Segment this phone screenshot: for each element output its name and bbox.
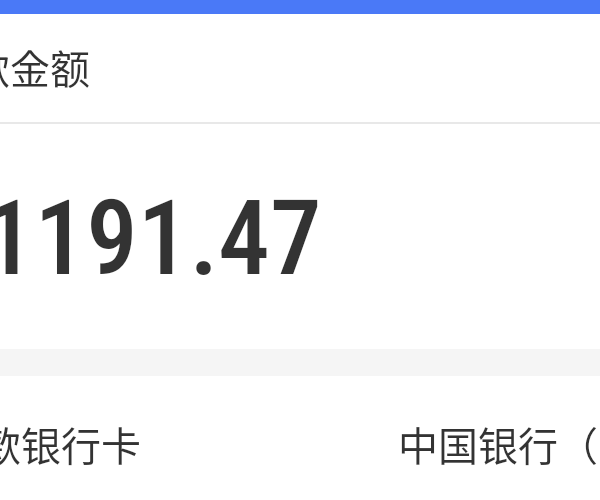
button[interactable]: 款银行卡 [0,376,600,500]
staticText: 款银行卡 [0,415,141,473]
button[interactable]: 1191.47 [0,124,600,349]
button[interactable]: 款金额 [0,14,600,122]
staticText: 款金额 [0,38,90,96]
staticText: 中国银行（ [398,415,598,473]
staticText: 1191.47 [0,178,322,299]
